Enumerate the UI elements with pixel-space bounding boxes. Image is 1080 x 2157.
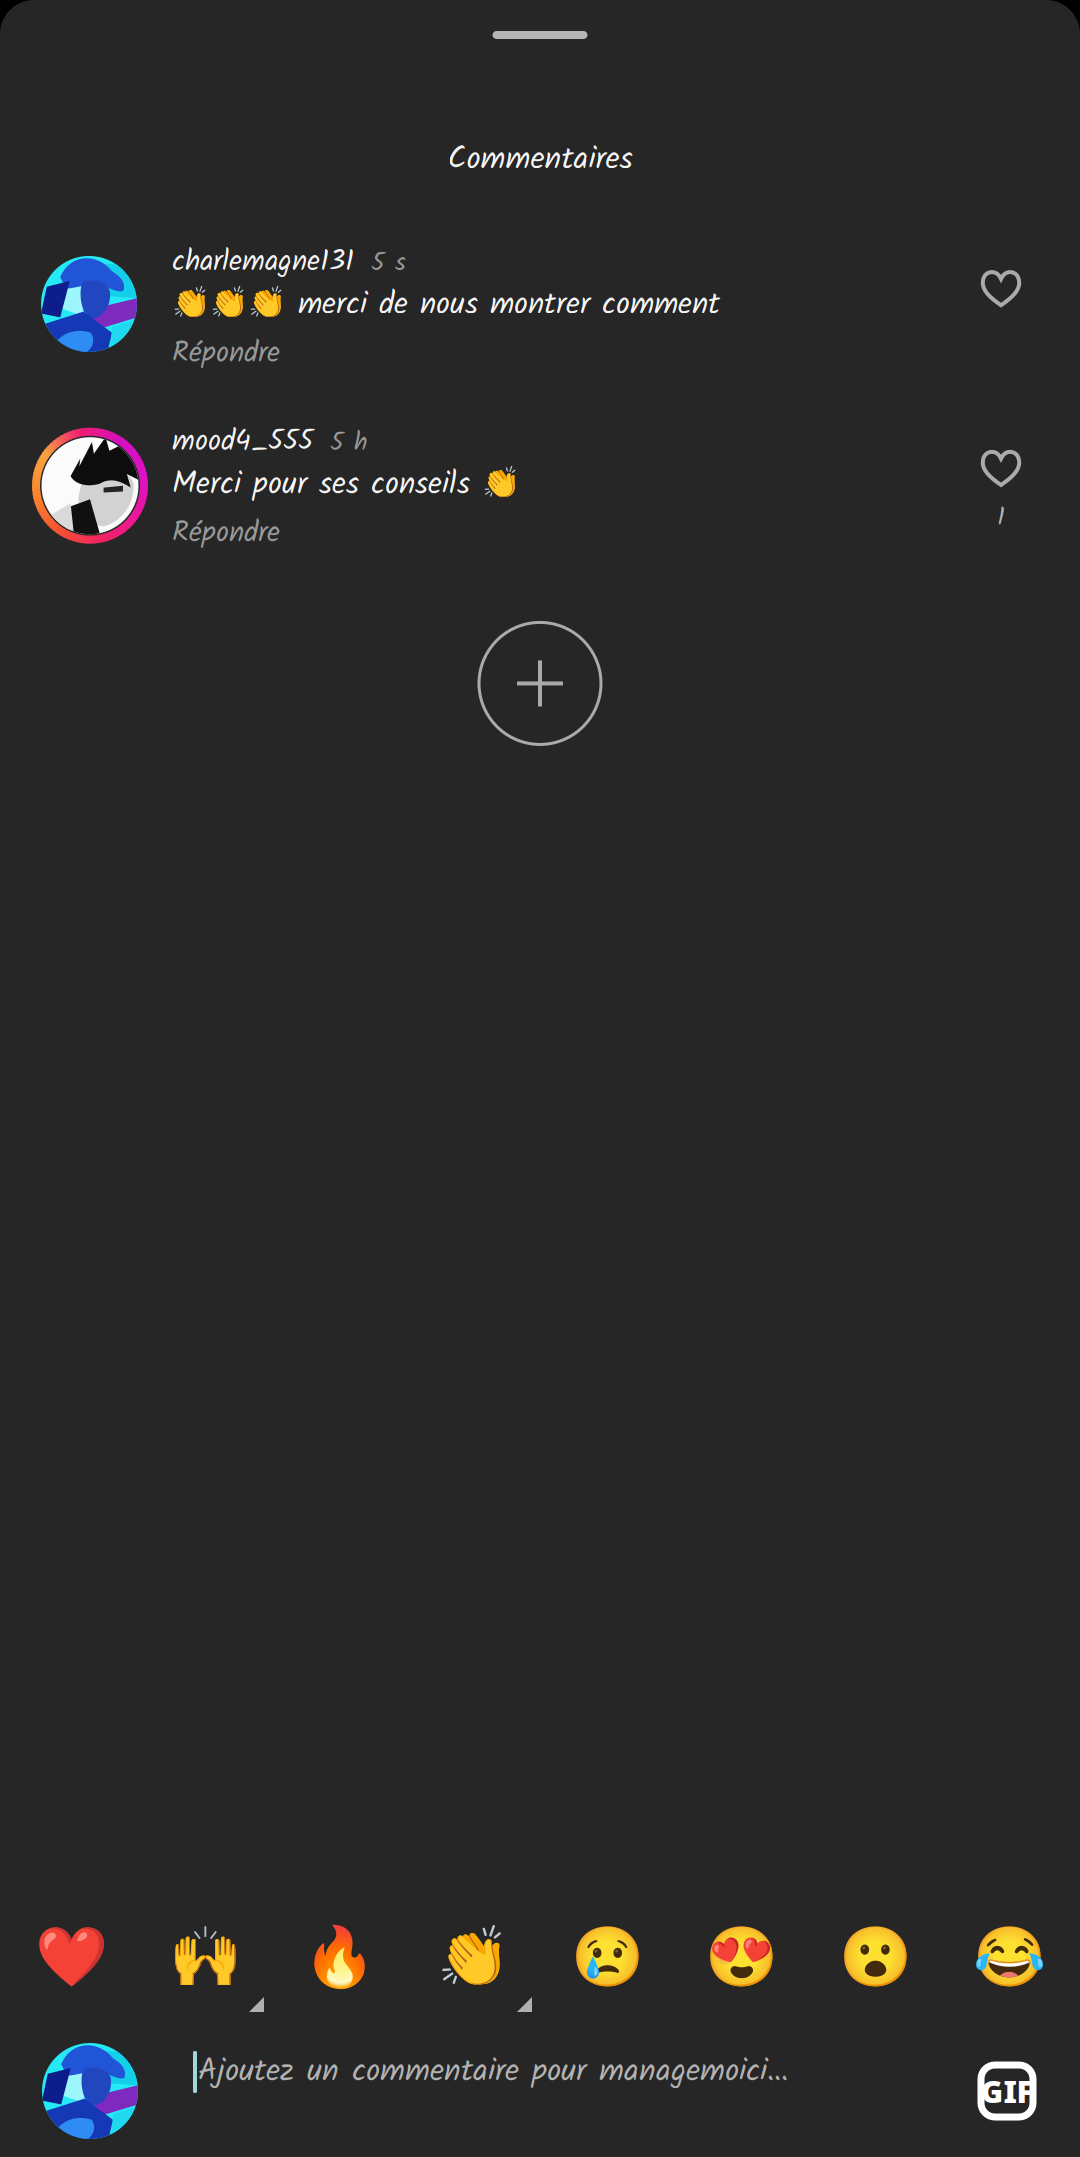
staticText: 😢 <box>570 1923 643 1990</box>
staticText: 1 <box>997 498 1005 538</box>
button[interactable]: Like charlemagne131's comment <box>961 245 1080 306</box>
staticText: mood4_555 <box>172 425 313 459</box>
button[interactable]: Like mood4_555's comment <box>961 425 1080 538</box>
button[interactable]: React with 😢 <box>540 1923 674 1990</box>
button[interactable]: React with 😂 <box>942 1923 1076 1990</box>
staticText: Commentaires <box>447 135 632 185</box>
staticText: GIF <box>980 2071 1033 2111</box>
staticText: 😮 <box>838 1923 911 1990</box>
staticText: Merci pour ses conseils 👏 <box>172 459 520 511</box>
button[interactable]: React with 😮 <box>808 1923 942 1990</box>
staticText: Ajoutez un commentaire pour managemoici… <box>198 2047 788 2097</box>
staticText: 5 h <box>330 428 368 458</box>
staticText: Répondre <box>172 331 280 377</box>
staticText: charlemagne131 <box>172 245 354 280</box>
staticText: 😍 <box>704 1923 777 1990</box>
staticText: 🙌 <box>168 1923 241 1990</box>
staticText: 👏👏👏 merci de nous montrer comment <box>172 280 720 331</box>
button[interactable]: React with 👏 <box>406 1923 540 1990</box>
staticText: 🔥 <box>302 1923 375 1990</box>
button[interactable]: React with 😍 <box>674 1923 808 1990</box>
staticText: 5 s <box>371 248 406 279</box>
staticText: 😂 <box>972 1923 1045 1990</box>
button[interactable]: React with 🔥 <box>272 1923 406 1990</box>
button[interactable]: Load more comments <box>479 622 601 744</box>
staticText: 👏 <box>436 1923 509 1990</box>
staticText: Répondre <box>172 511 280 556</box>
button[interactable]: Add a GIF <box>978 2062 1080 2120</box>
staticText: ❤️ <box>34 1923 107 1990</box>
button[interactable]: React with ❤️ <box>4 1923 138 1990</box>
button[interactable]: React with 🙌 <box>138 1923 272 1990</box>
